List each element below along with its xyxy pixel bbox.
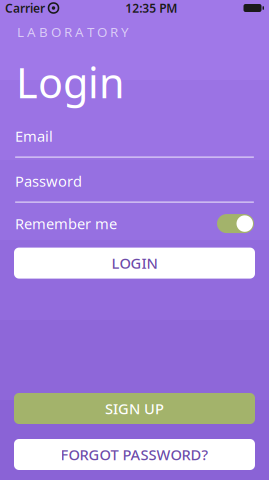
staticText: LOGIN [111,253,157,273]
staticText: Email [15,126,53,146]
staticText: SIGN UP [105,399,164,418]
staticText: FORGOT PASSWORD? [60,445,208,464]
staticText: Login [16,55,125,110]
staticText: Remember me [15,214,117,233]
staticText: L A B O R A T O R Y [17,23,129,41]
button[interactable]: Remember me [0,213,269,235]
button[interactable]: FORGOT PASSWORD? [14,439,255,470]
button[interactable]: LOGIN [14,248,255,279]
button[interactable]: SIGN UP [14,393,255,424]
staticText: Carrier [5,0,45,16]
staticText: Password [15,171,82,191]
staticText: 12:35 PM [125,0,177,16]
